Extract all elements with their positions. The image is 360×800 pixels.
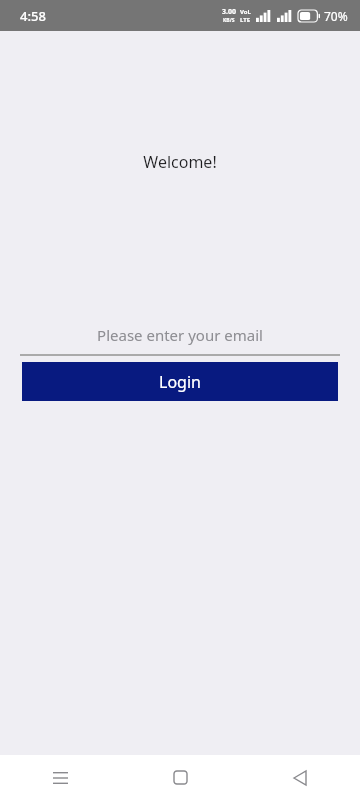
button[interactable]: Home (120, 755, 240, 800)
staticText: Login (159, 371, 201, 393)
button[interactable]: Please enter your email (20, 321, 340, 349)
staticText: Welcome! (143, 151, 217, 173)
staticText: VoL (240, 8, 251, 16)
staticText: Please enter your email (97, 325, 263, 345)
staticText: KB/S (223, 17, 235, 24)
staticText: LTE (240, 16, 251, 24)
button[interactable]: Login (22, 362, 338, 401)
staticText: 4:58 (20, 7, 46, 25)
staticText: 70% (324, 8, 348, 24)
staticText: 3.00 (222, 7, 236, 17)
button[interactable]: Recent apps (0, 755, 120, 800)
button[interactable]: Back (240, 755, 360, 800)
